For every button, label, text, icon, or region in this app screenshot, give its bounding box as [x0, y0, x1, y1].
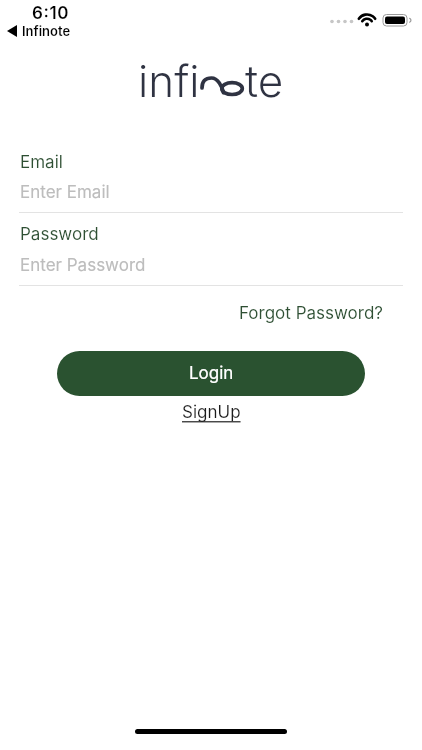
staticText: te [245, 54, 284, 107]
button[interactable]: Login [57, 351, 365, 396]
staticText: infi [138, 54, 200, 107]
staticText: Enter Password [20, 255, 146, 276]
staticText: Forgot Password? [239, 303, 384, 324]
staticText: Password [20, 224, 99, 245]
staticText: SignUp [182, 402, 241, 423]
staticText: Infinote [22, 23, 71, 39]
button[interactable]: Forgot Password? [239, 303, 384, 324]
button[interactable]: SignUp [182, 402, 241, 423]
button[interactable]: Infinote [7, 23, 71, 39]
staticText: Email [20, 152, 63, 173]
staticText: 6:10 [32, 3, 70, 24]
staticText: Login [189, 363, 234, 384]
staticText: Enter Email [20, 182, 110, 203]
